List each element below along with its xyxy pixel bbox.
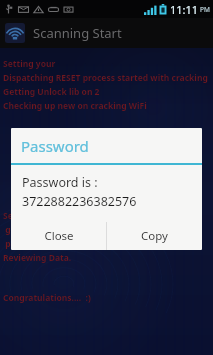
staticText: Setting with RSS xyxy=(3,210,72,222)
staticText: Getting Unlock lib on 2 xyxy=(3,86,100,98)
staticText: 11:11 xyxy=(170,2,199,17)
staticText: Close xyxy=(44,228,74,244)
other: App icon xyxy=(4,22,26,44)
staticText: Setting your xyxy=(3,58,58,70)
staticText: Checking up new on cracking WiFi xyxy=(3,100,147,112)
staticText: Password is : xyxy=(22,174,98,191)
staticText: Dispatching RESET process started with c… xyxy=(3,72,208,84)
staticText: Scanning Start xyxy=(33,24,122,42)
staticText: Password xyxy=(21,136,89,156)
staticText: PM xyxy=(200,5,210,14)
button[interactable]: Copy xyxy=(107,222,202,250)
staticText: getting 210 response on server side xyxy=(3,224,156,236)
staticText: Copy xyxy=(141,228,168,244)
button[interactable]: Close xyxy=(11,222,106,250)
staticText: patching up Success and Cracking xyxy=(3,238,149,250)
button[interactable]: App icon xyxy=(0,18,213,48)
staticText: Congratulations.... :) xyxy=(3,292,91,304)
staticText: Reviewing Data. xyxy=(3,252,72,264)
staticText: 3722882236382576 xyxy=(22,193,137,210)
